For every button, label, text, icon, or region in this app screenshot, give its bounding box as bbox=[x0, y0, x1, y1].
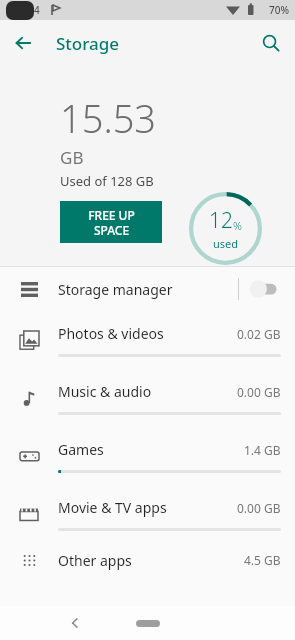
button[interactable]: Back bbox=[62, 610, 88, 636]
staticText: 15.53 bbox=[60, 92, 157, 144]
button[interactable]: FREE UP SPACE bbox=[60, 201, 162, 243]
button[interactable]: Storage manager bbox=[0, 267, 295, 311]
button[interactable]: Back bbox=[6, 26, 40, 60]
staticText: 0.02 GB bbox=[237, 326, 281, 342]
button[interactable]: Movie & TV apps bbox=[0, 485, 295, 543]
staticText: 0.00 GB bbox=[237, 500, 281, 516]
staticText: Storage manager bbox=[58, 280, 238, 299]
staticText: Used of 128 GB bbox=[60, 172, 154, 190]
staticText: Movie & TV apps bbox=[58, 498, 237, 517]
staticText: used bbox=[213, 236, 239, 251]
staticText: 1.4 GB bbox=[244, 442, 281, 458]
staticText: GB bbox=[60, 146, 84, 169]
staticText: % bbox=[233, 218, 242, 233]
staticText: Other apps bbox=[58, 551, 244, 570]
staticText: 12 bbox=[209, 206, 233, 235]
staticText: 4 bbox=[34, 3, 40, 17]
button[interactable]: Music & audio bbox=[0, 369, 295, 427]
staticText: Music & audio bbox=[58, 382, 237, 401]
button[interactable]: Other apps bbox=[0, 543, 295, 577]
staticText: FREE UP SPACE bbox=[88, 207, 135, 238]
staticText: 70% bbox=[269, 3, 289, 17]
button[interactable]: Games bbox=[0, 427, 295, 485]
staticText: 4.5 GB bbox=[244, 552, 281, 568]
staticText: Photos & videos bbox=[58, 324, 237, 343]
staticText: 0.00 GB bbox=[237, 384, 281, 400]
button[interactable]: Search bbox=[253, 25, 289, 61]
button[interactable]: Storage manager toggle bbox=[239, 269, 291, 309]
staticText: Games bbox=[58, 440, 244, 459]
button[interactable]: Photos & videos bbox=[0, 311, 295, 369]
staticText: Storage bbox=[56, 32, 120, 55]
button[interactable]: Home bbox=[128, 612, 168, 634]
